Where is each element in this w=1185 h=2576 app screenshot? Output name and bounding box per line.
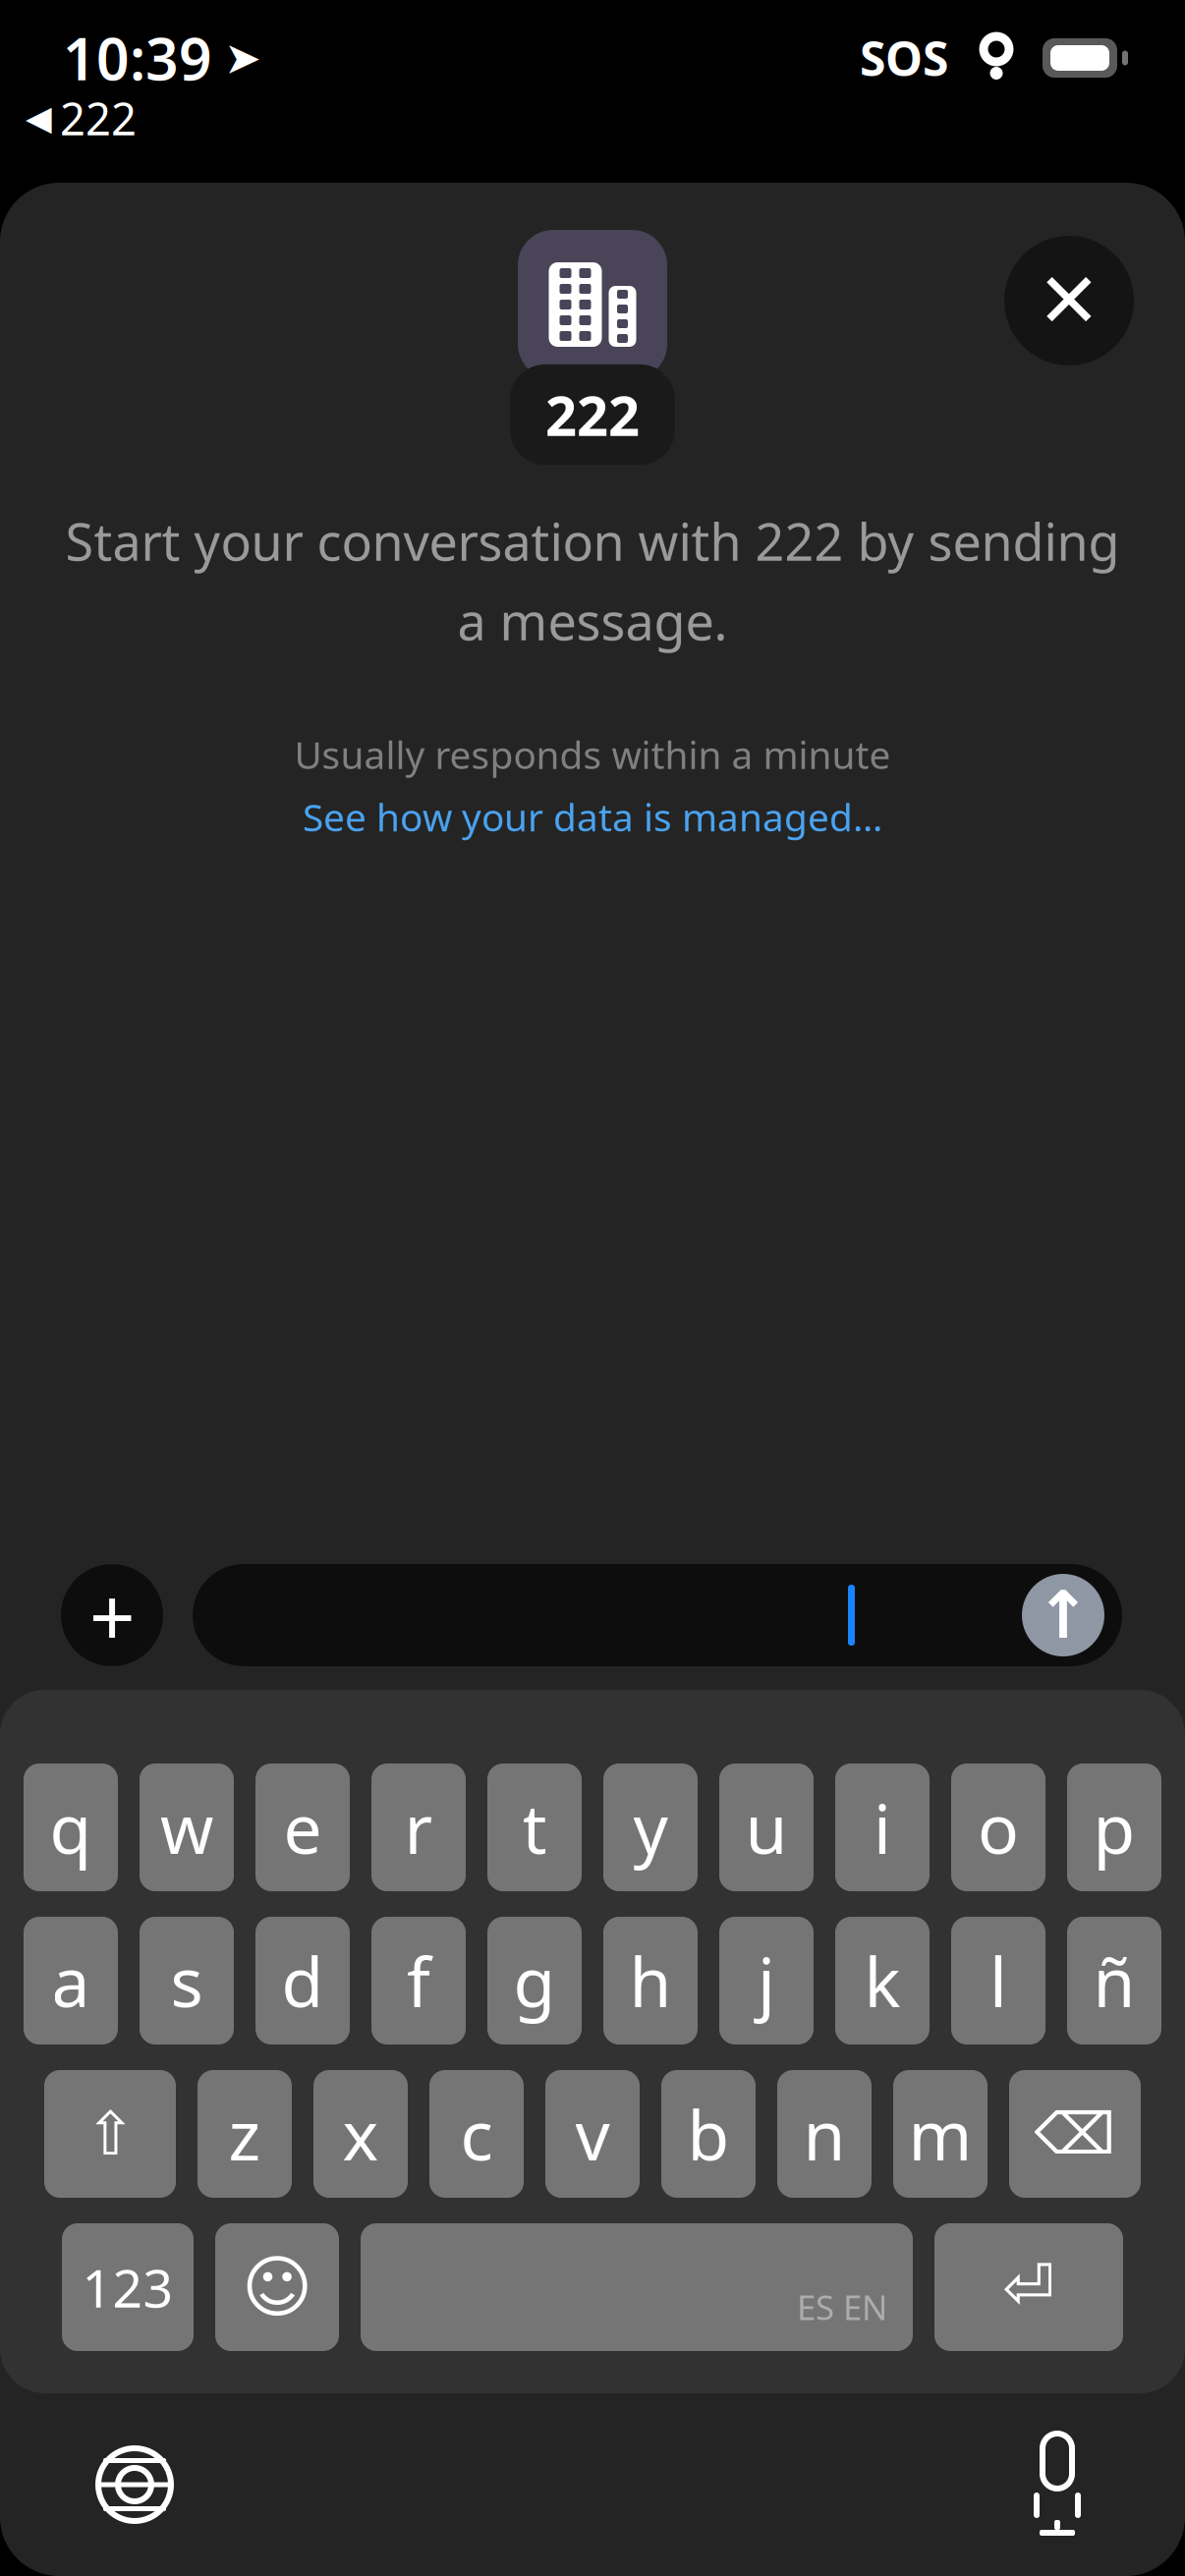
- staticText: ➤: [224, 33, 261, 83]
- button[interactable]: Delete: [1009, 2070, 1141, 2198]
- staticText: +: [89, 1561, 135, 1669]
- button[interactable]: i: [835, 1764, 930, 1891]
- button[interactable]: s: [140, 1917, 234, 2044]
- staticText: ⌫: [1034, 2101, 1116, 2167]
- staticText: x: [342, 2089, 379, 2179]
- button[interactable]: u: [719, 1764, 814, 1891]
- button[interactable]: Numbers: [62, 2223, 194, 2351]
- staticText: b: [687, 2089, 730, 2179]
- button[interactable]: t: [487, 1764, 582, 1891]
- button[interactable]: Close: [1004, 236, 1134, 365]
- button[interactable]: v: [545, 2070, 640, 2198]
- staticText: ☺: [242, 2249, 312, 2326]
- button[interactable]: Add attachment: [61, 1561, 163, 1669]
- staticText: h: [629, 1935, 672, 2026]
- staticText: f: [407, 1935, 430, 2026]
- button[interactable]: y: [603, 1764, 698, 1891]
- staticText: k: [864, 1935, 901, 2026]
- staticText: ñ: [1093, 1935, 1135, 2026]
- staticText: j: [758, 1935, 775, 2026]
- button[interactable]: w: [140, 1764, 234, 1891]
- button[interactable]: j: [719, 1917, 814, 2044]
- button[interactable]: h: [603, 1917, 698, 2044]
- button[interactable]: g: [487, 1917, 582, 2044]
- button[interactable]: o: [951, 1764, 1045, 1891]
- staticText: t: [522, 1782, 547, 1873]
- staticText: Start your conversation with 222 by send…: [65, 507, 1120, 575]
- staticText: 123: [82, 2252, 173, 2322]
- staticText: SOS: [860, 27, 948, 89]
- staticText: ◀: [26, 99, 52, 137]
- button[interactable]: ñ: [1067, 1917, 1161, 2044]
- button[interactable]: Shift: [44, 2070, 176, 2198]
- staticText: a: [52, 1935, 90, 2026]
- staticText: Usually responds within a minute: [294, 729, 891, 779]
- button[interactable]: Dictate: [1012, 2414, 1102, 2555]
- button[interactable]: Return: [934, 2223, 1123, 2351]
- staticText: s: [170, 1935, 203, 2026]
- button[interactable]: m: [893, 2070, 987, 2198]
- button[interactable]: b: [661, 2070, 756, 2198]
- staticText: y: [633, 1782, 668, 1873]
- staticText: r: [404, 1782, 433, 1873]
- staticText: c: [460, 2089, 493, 2179]
- button[interactable]: See how your data is managed...: [295, 787, 890, 846]
- staticText: See how your data is managed...: [303, 791, 882, 842]
- staticText: q: [50, 1782, 92, 1873]
- button[interactable]: ◀: [22, 83, 141, 153]
- button[interactable]: z: [197, 2070, 292, 2198]
- staticText: 222: [60, 88, 137, 148]
- staticText: 10:39: [63, 20, 212, 96]
- staticText: w: [160, 1782, 213, 1873]
- staticText: z: [228, 2089, 261, 2179]
- button[interactable]: f: [371, 1917, 466, 2044]
- button[interactable]: ↑: [193, 1564, 1122, 1666]
- staticText: i: [874, 1782, 891, 1873]
- staticText: 222: [545, 378, 640, 451]
- button[interactable]: l: [951, 1917, 1045, 2044]
- button[interactable]: Emoji: [215, 2223, 339, 2351]
- button[interactable]: p: [1067, 1764, 1161, 1891]
- staticText: u: [745, 1782, 788, 1873]
- staticText: a message.: [457, 587, 728, 655]
- button[interactable]: a: [24, 1917, 118, 2044]
- staticText: n: [803, 2089, 846, 2179]
- button[interactable]: r: [371, 1764, 466, 1891]
- button[interactable]: n: [777, 2070, 872, 2198]
- button[interactable]: c: [429, 2070, 524, 2198]
- button[interactable]: e: [255, 1764, 350, 1891]
- staticText: ↑: [1036, 1578, 1091, 1652]
- staticText: l: [989, 1935, 1007, 2026]
- staticText: ✕: [1037, 258, 1101, 344]
- staticText: p: [1093, 1782, 1135, 1873]
- staticText: g: [513, 1935, 556, 2026]
- button[interactable]: q: [24, 1764, 118, 1891]
- button[interactable]: d: [255, 1917, 350, 2044]
- button[interactable]: Space: [361, 2223, 913, 2351]
- staticText: v: [575, 2089, 610, 2179]
- staticText: ⏎: [1002, 2251, 1055, 2323]
- button[interactable]: Change keyboard language: [79, 2429, 191, 2541]
- button[interactable]: x: [313, 2070, 408, 2198]
- button[interactable]: k: [835, 1917, 930, 2044]
- staticText: ES EN: [797, 2284, 887, 2329]
- staticText: d: [282, 1935, 324, 2026]
- staticText: o: [978, 1782, 1019, 1873]
- staticText: ⇧: [85, 2100, 135, 2168]
- staticText: m: [908, 2089, 972, 2179]
- staticText: e: [283, 1782, 322, 1873]
